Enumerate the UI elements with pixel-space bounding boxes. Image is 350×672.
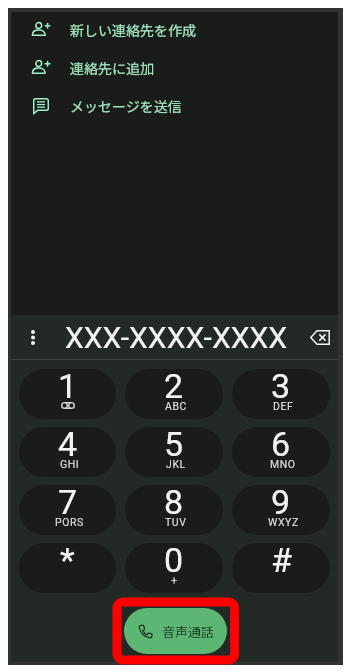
staticText: 7 — [58, 485, 78, 522]
button[interactable]: 0 — [125, 543, 223, 593]
staticText: TUV — [165, 516, 187, 526]
staticText: GHI — [60, 458, 80, 468]
button[interactable]: 4 — [19, 427, 116, 477]
staticText: 連絡先に追加 — [70, 58, 154, 78]
staticText: 1 — [58, 369, 78, 406]
staticText: PQRS — [55, 516, 84, 526]
staticText: 5 — [164, 427, 184, 464]
staticText: 3 — [271, 369, 291, 406]
button[interactable]: * — [19, 543, 116, 593]
staticText: 新しい連絡先を作成 — [70, 20, 196, 40]
button[interactable]: 連絡先に追加 — [11, 49, 338, 87]
button[interactable]: Backspace — [304, 321, 336, 353]
staticText: ABC — [165, 400, 188, 410]
button[interactable]: 2 — [125, 369, 223, 419]
button[interactable]: 8 — [125, 485, 223, 535]
staticText: DEF — [273, 400, 294, 410]
staticText: WXYZ — [268, 516, 299, 526]
staticText: MNO — [270, 458, 296, 468]
staticText: 8 — [164, 485, 184, 522]
button[interactable]: 5 — [125, 427, 223, 477]
staticText: + — [171, 574, 178, 584]
button[interactable]: 1 — [19, 369, 116, 419]
staticText: メッセージを送信 — [70, 96, 182, 116]
button[interactable]: 9 — [232, 485, 330, 535]
staticText: 音声通話 — [162, 622, 215, 641]
staticText: * — [60, 543, 75, 580]
button[interactable]: メッセージを送信 — [11, 87, 338, 125]
button[interactable]: 6 — [232, 427, 330, 477]
button[interactable]: More options — [19, 323, 47, 351]
staticText: XXX-XXXX-XXXX — [65, 320, 288, 355]
staticText: # — [271, 543, 292, 580]
staticText: 0 — [164, 543, 184, 580]
button[interactable]: 3 — [232, 369, 330, 419]
staticText: 4 — [58, 427, 78, 464]
button[interactable]: 7 — [19, 485, 116, 535]
button[interactable]: 音声通話 — [124, 608, 227, 654]
staticText: 6 — [271, 427, 291, 464]
button[interactable]: # — [232, 543, 330, 593]
staticText: 2 — [164, 369, 184, 406]
staticText: 9 — [271, 485, 291, 522]
button[interactable]: 新しい連絡先を作成 — [11, 11, 338, 49]
staticText: JKL — [166, 458, 186, 468]
